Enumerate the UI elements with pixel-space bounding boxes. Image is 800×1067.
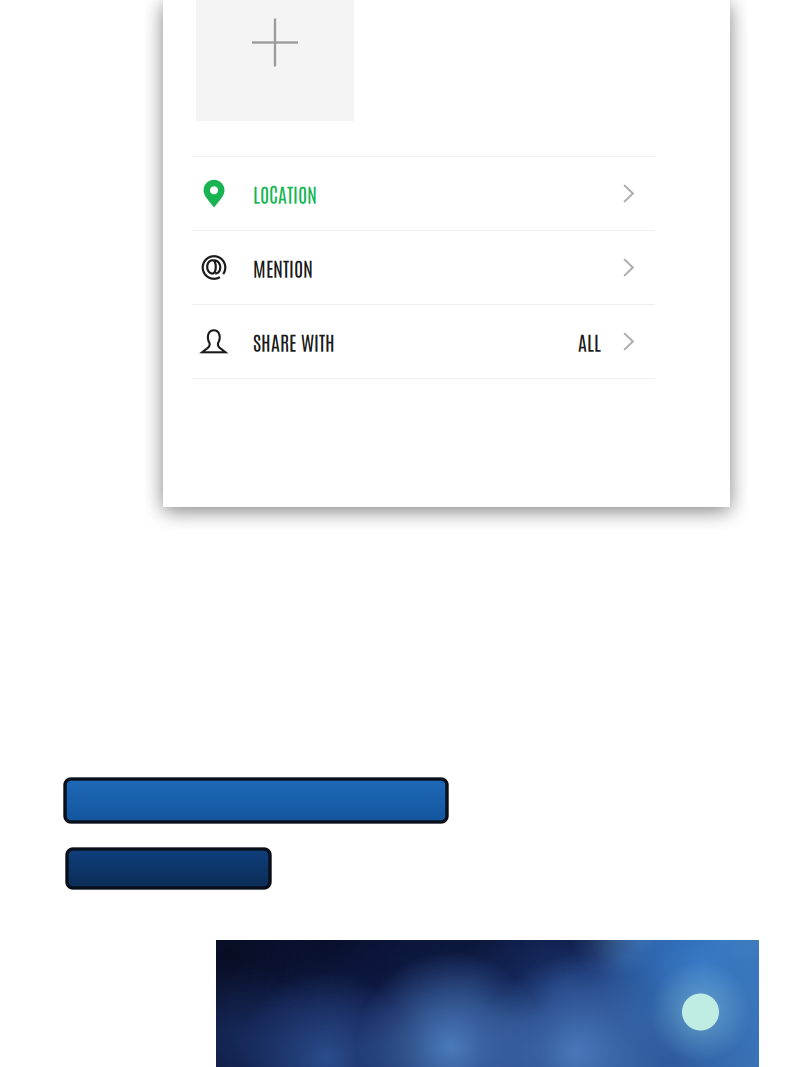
- staticText: ALL: [578, 329, 601, 354]
- staticText: MENTION: [253, 255, 313, 280]
- button[interactable]: SHARE WITH: [192, 305, 655, 378]
- button[interactable]: MENTION: [192, 231, 655, 304]
- staticText: LOCATION: [253, 181, 317, 206]
- button[interactable]: LOCATION: [192, 157, 655, 230]
- staticText: SHARE WITH: [253, 329, 335, 354]
